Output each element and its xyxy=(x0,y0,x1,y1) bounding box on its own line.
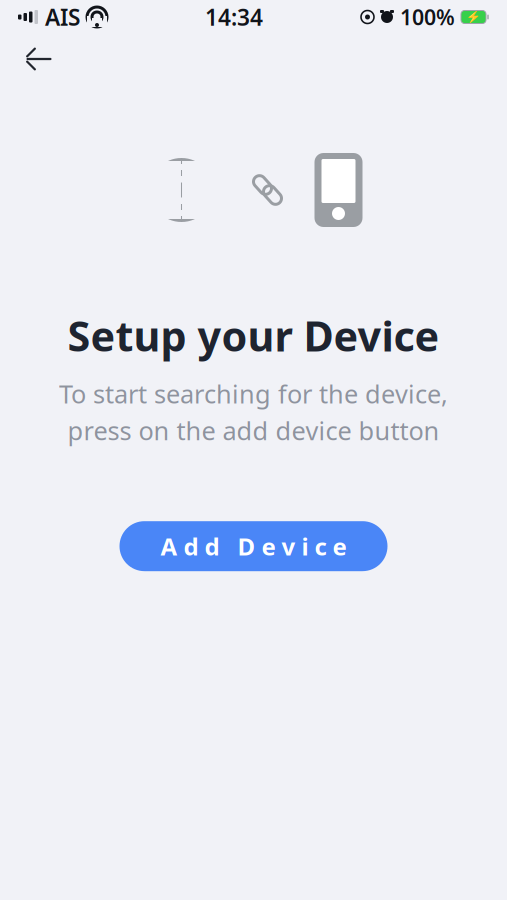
staticText: ⚡ xyxy=(466,10,481,24)
staticText: 14:34 xyxy=(205,2,263,32)
button[interactable]: A d d D e v i c e xyxy=(119,521,387,571)
staticText: A d d D e v i c e xyxy=(160,530,346,562)
staticText: 100% xyxy=(400,3,455,31)
staticText: AIS xyxy=(45,2,80,32)
staticText: Setup your Device xyxy=(67,308,439,363)
button[interactable]: Back xyxy=(16,36,62,82)
staticText: To start searching for the device, xyxy=(59,377,448,410)
staticText: press on the add device button xyxy=(67,413,439,447)
